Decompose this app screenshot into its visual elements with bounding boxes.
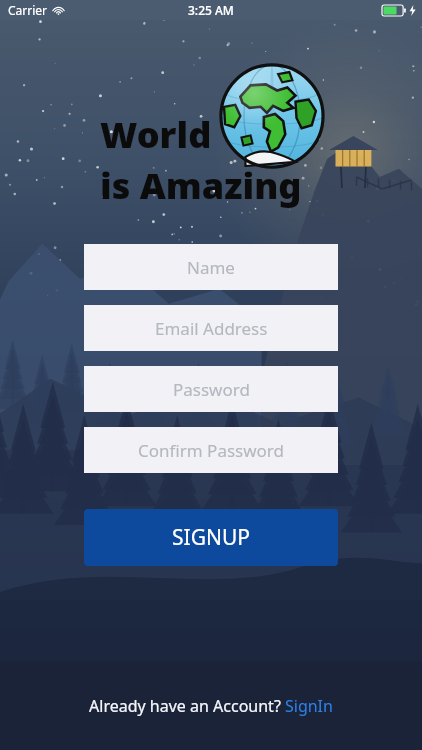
staticText: is Amazing [100,161,302,210]
button[interactable]: Name [84,244,338,290]
staticText: Already have an Account? SignIn [89,695,333,717]
button[interactable]: SIGNUP [84,509,338,566]
staticText: Password [173,378,250,401]
staticText: 3:25 AM [188,2,234,18]
staticText: Name [187,256,235,279]
staticText: Email Address [155,317,268,340]
button[interactable]: Already have an Account? SignIn [0,662,422,750]
button[interactable]: Confirm Password [84,427,338,473]
button[interactable]: Password [84,366,338,412]
staticText: Confirm Password [138,439,284,462]
staticText: Carrier [8,2,48,18]
button[interactable]: Email Address [84,305,338,351]
staticText: SIGNUP [172,523,250,552]
staticText: World [100,110,212,159]
